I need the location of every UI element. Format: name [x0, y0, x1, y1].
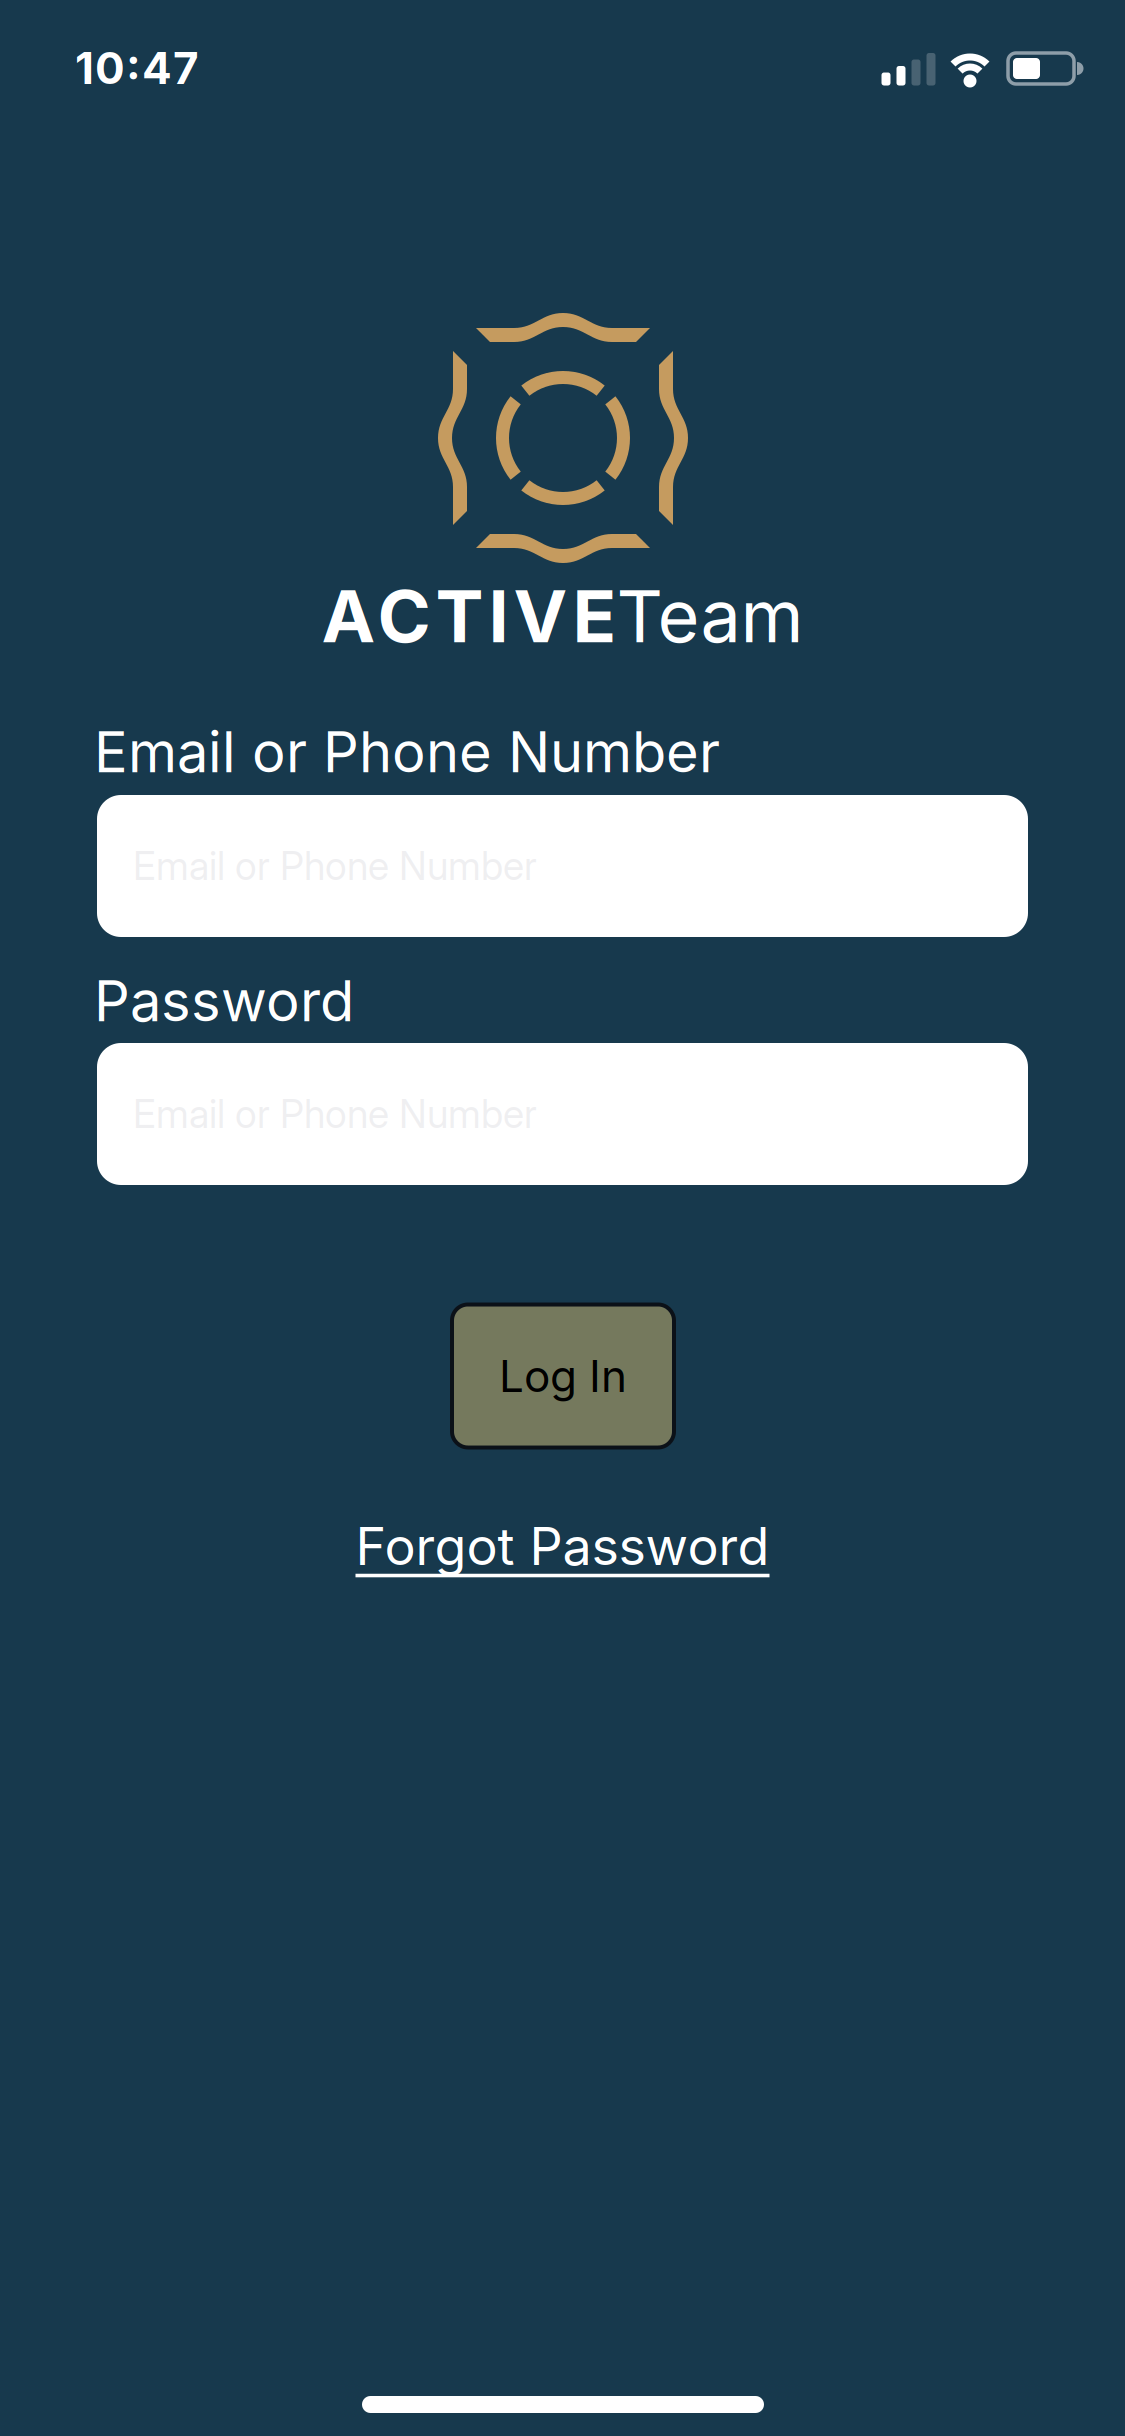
- staticText: Forgot Password: [355, 1515, 769, 1577]
- button[interactable]: Forgot Password: [355, 1515, 769, 1577]
- staticText: 10:47: [75, 42, 199, 94]
- staticText: Email or Phone Number: [133, 843, 537, 889]
- staticText: Log In: [499, 1350, 627, 1402]
- button[interactable]: Email or Phone Number: [97, 795, 1028, 937]
- staticText: Password: [94, 968, 354, 1034]
- staticText: ACTIVE: [321, 573, 616, 658]
- staticText: Email or Phone Number: [94, 719, 720, 785]
- staticText: Email or Phone Number: [133, 1091, 537, 1137]
- button[interactable]: Log In: [452, 1304, 674, 1447]
- button[interactable]: Email or Phone Number: [97, 1043, 1028, 1185]
- staticText: Team: [616, 573, 803, 658]
